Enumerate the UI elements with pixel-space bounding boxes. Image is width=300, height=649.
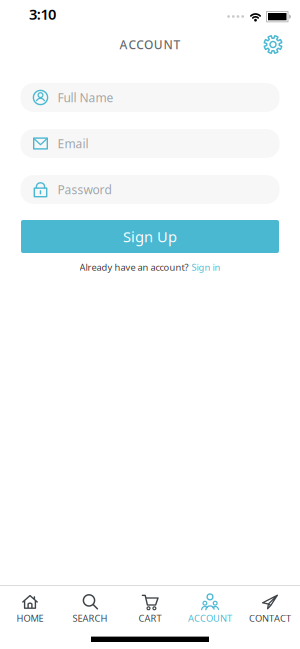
button[interactable]: Sign in <box>191 261 220 273</box>
staticText: Sign in <box>191 261 220 273</box>
staticText: ACCOUNT <box>120 36 180 52</box>
staticText: SEARCH <box>72 612 107 624</box>
staticText: 3:10 <box>29 4 56 24</box>
staticText: Sign Up <box>123 227 177 246</box>
staticText: HOME <box>16 612 43 624</box>
staticText: Full Name <box>57 89 113 105</box>
button[interactable]: Sign Up <box>21 220 279 253</box>
button[interactable]: SEARCH <box>60 593 120 624</box>
staticText: Password <box>57 181 111 197</box>
button[interactable]: Full Name <box>20 83 279 112</box>
button[interactable]: ACCOUNT <box>180 593 240 624</box>
staticText: Already have an account? <box>79 261 188 273</box>
button[interactable]: CART <box>120 593 180 624</box>
button[interactable]: CONTACT <box>240 593 300 624</box>
staticText: Email <box>57 135 88 151</box>
staticText: CART <box>138 612 161 624</box>
button[interactable]: Email <box>20 129 279 158</box>
button[interactable]: Password <box>20 175 279 204</box>
staticText: CONTACT <box>249 612 291 624</box>
button[interactable]: HOME <box>0 593 60 624</box>
button[interactable]: Settings <box>263 34 300 54</box>
staticText: ACCOUNT <box>188 612 232 624</box>
